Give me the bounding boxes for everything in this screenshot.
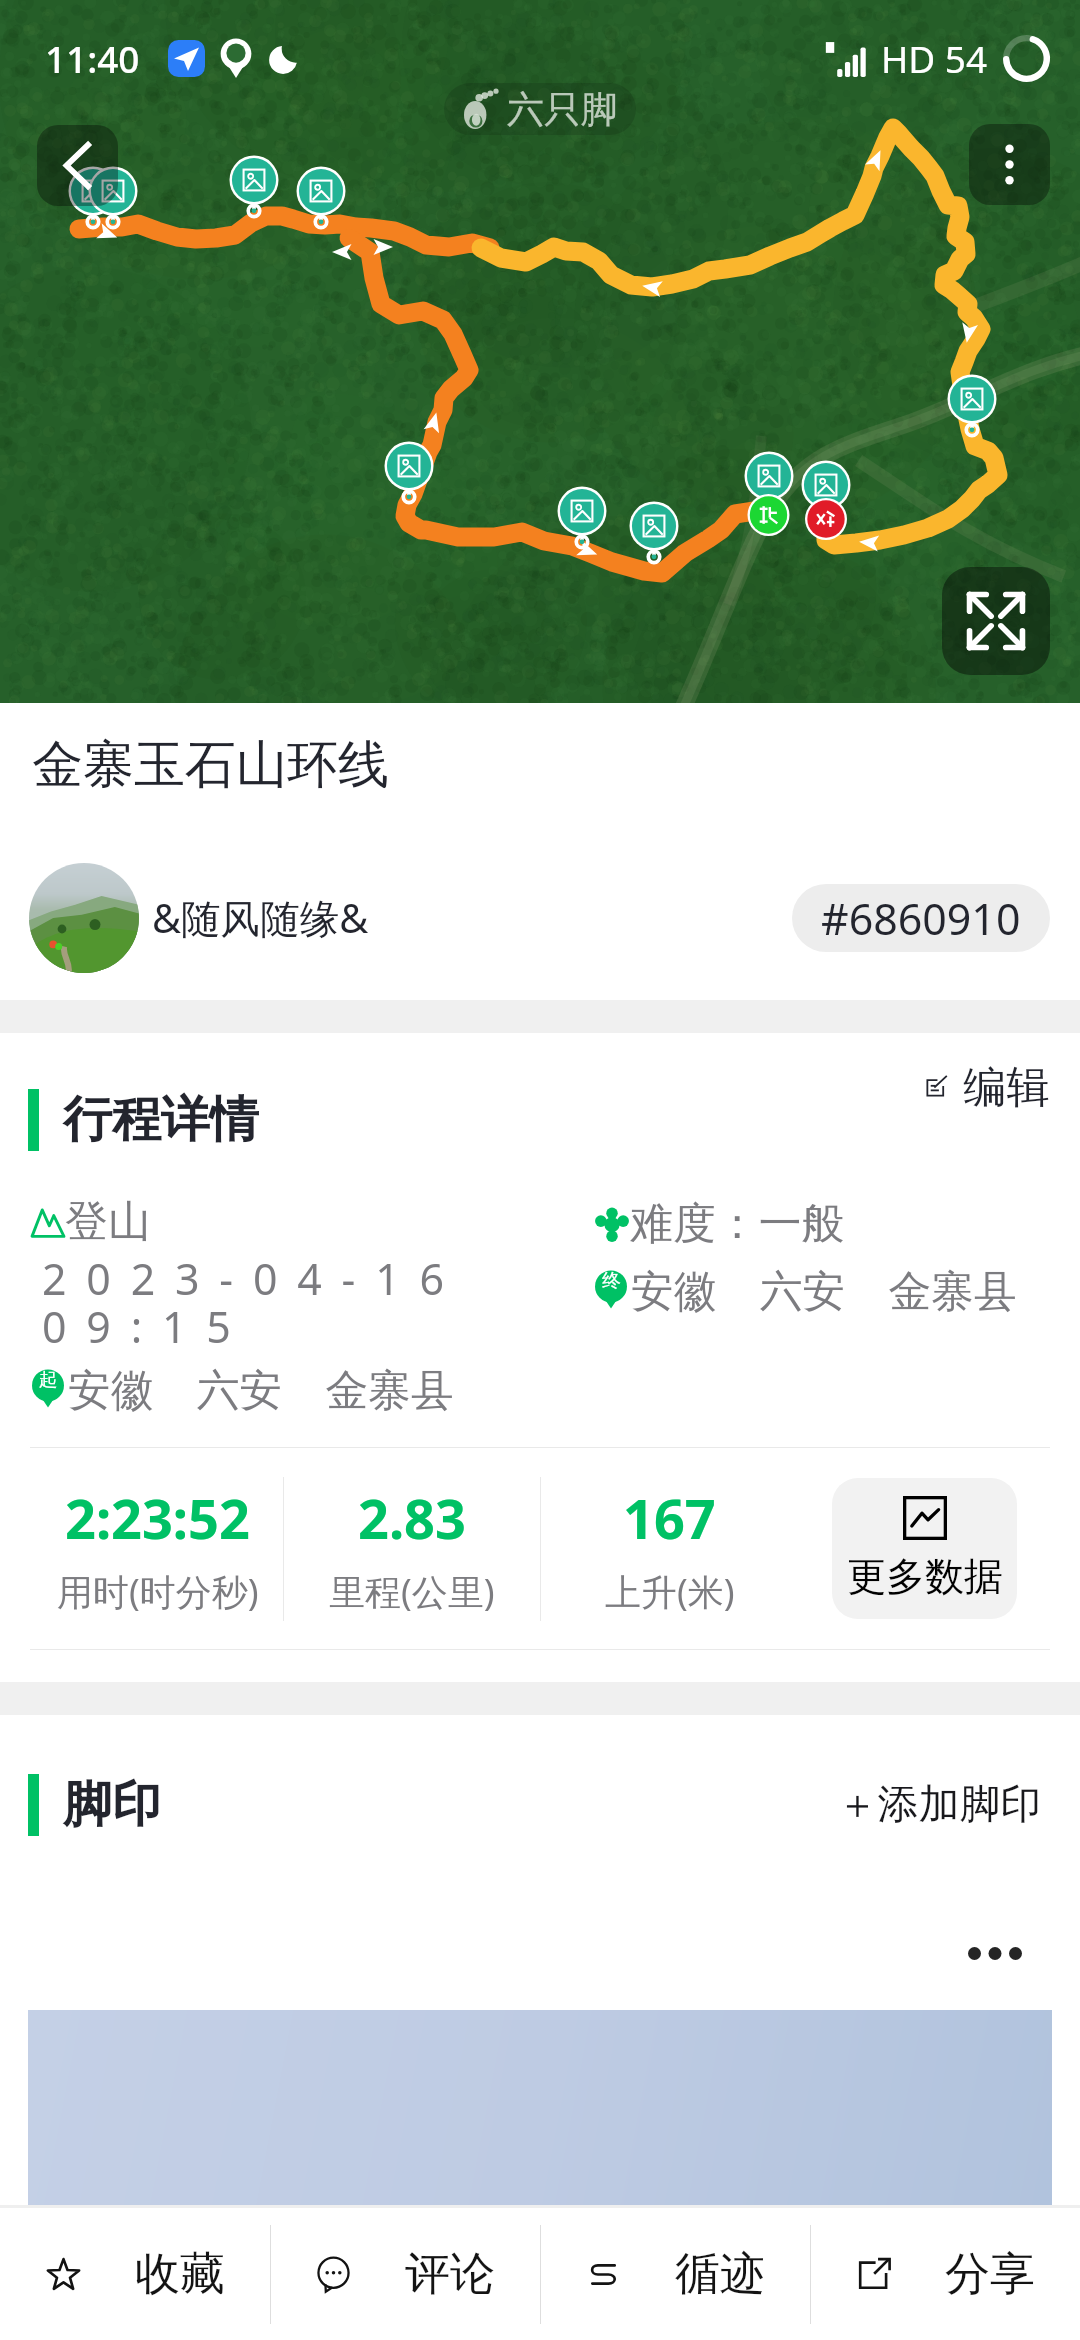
button[interactable]: More options — [969, 124, 1050, 205]
staticText: 起 — [39, 1368, 58, 1392]
button[interactable]: #6860910 — [792, 884, 1050, 952]
button[interactable]: Back — [37, 125, 118, 206]
staticText: ＋添加脚印 — [837, 1779, 1041, 1830]
staticText: 登山 — [65, 1195, 151, 1249]
button[interactable]: 循迹 — [541, 2208, 810, 2340]
button[interactable]: 编辑 — [915, 1051, 1050, 1123]
button[interactable]: 评论 — [271, 2208, 540, 2340]
button[interactable] — [28, 2010, 1052, 2205]
staticText: 六只脚 — [507, 86, 618, 132]
staticText: HD 54 — [881, 34, 988, 84]
staticText: 难度：一般 — [630, 1197, 845, 1251]
staticText: 分享 — [945, 2246, 1035, 2303]
staticText: 2023-04-16 09:15 — [42, 1249, 594, 1356]
staticText: 评论 — [405, 2246, 495, 2303]
staticText: #6860910 — [821, 889, 1021, 947]
staticText: 行程详情 — [63, 1089, 259, 1151]
staticText: 2:23:52 — [65, 1481, 250, 1555]
staticText: 上升(米) — [605, 1567, 735, 1616]
button[interactable]: ＋添加脚印 — [828, 1770, 1050, 1839]
staticText: 收藏 — [135, 2246, 225, 2303]
staticText: 2.83 — [358, 1481, 466, 1555]
staticText: 脚印 — [63, 1774, 161, 1836]
button[interactable]: 分享 — [811, 2208, 1080, 2340]
staticText: 编辑 — [963, 1060, 1050, 1114]
staticText: 金寨玉石山环线 — [32, 733, 389, 797]
staticText: 用时(时分秒) — [57, 1567, 259, 1616]
button[interactable]: Fullscreen — [942, 567, 1050, 675]
staticText: 更多数据 — [847, 1552, 1003, 1601]
button[interactable]: 收藏 — [0, 2208, 270, 2340]
button[interactable] — [29, 863, 139, 973]
button[interactable]: 更多数据 — [832, 1478, 1017, 1619]
staticText: 里程(公里) — [329, 1567, 495, 1616]
staticText: 11:40 — [45, 34, 140, 84]
staticText: 终 — [602, 1269, 621, 1293]
staticText: 循迹 — [675, 2246, 765, 2303]
button[interactable]: &随风随缘& — [152, 891, 369, 945]
staticText: 167 — [623, 1481, 716, 1555]
staticText: 安徽 六安 金寨县 — [68, 1359, 455, 1418]
staticText: 安徽 六安 金寨县 — [631, 1260, 1018, 1319]
